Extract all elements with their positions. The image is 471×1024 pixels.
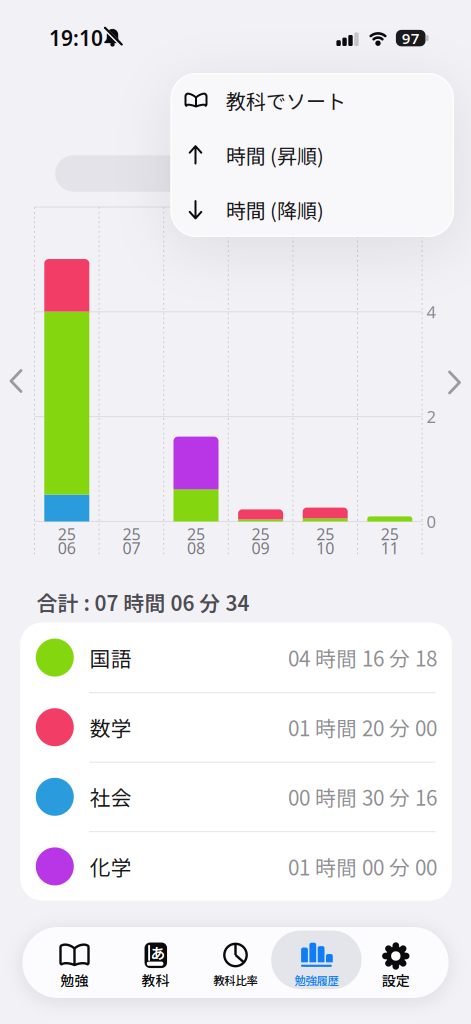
staticText: 25	[381, 523, 399, 545]
button[interactable]: 勉強履歴	[276, 928, 356, 992]
staticText: 数学	[90, 712, 132, 742]
button[interactable]: 設定	[356, 928, 436, 992]
button[interactable]: 教科比率	[195, 928, 275, 992]
staticText: 10	[316, 537, 334, 559]
staticText: 25	[122, 523, 140, 545]
staticText: 25	[252, 523, 270, 545]
staticText: 教科比率	[213, 972, 257, 988]
button[interactable]: 国語	[20, 623, 452, 692]
button[interactable]: 教科でソート	[170, 73, 454, 128]
staticText: 01 時間 20 分 00	[288, 712, 437, 742]
staticText: 設定	[382, 970, 410, 990]
staticText: 09	[252, 537, 270, 559]
button[interactable]: あ	[115, 928, 195, 992]
staticText: 教科でソート	[226, 86, 346, 115]
staticText: 25	[316, 523, 334, 545]
staticText: 19:10	[49, 23, 103, 52]
staticText: 0	[426, 510, 436, 533]
button[interactable]: 化学	[20, 832, 452, 901]
button[interactable]: 勉強	[34, 928, 114, 992]
staticText: 時間 (降順)	[226, 195, 324, 224]
button[interactable]	[442, 368, 466, 398]
staticText: 時間 (昇順)	[226, 140, 324, 169]
staticText: 07	[122, 537, 140, 559]
button[interactable]: 時間 (降順)	[170, 182, 454, 237]
staticText: 25	[187, 523, 205, 545]
button[interactable]: 数学	[20, 692, 452, 762]
staticText: 08	[187, 537, 205, 559]
staticText: 国語	[90, 643, 132, 672]
staticText: 01 時間 00 分 00	[288, 851, 437, 881]
staticText: 11	[381, 537, 399, 559]
button[interactable]: 社会	[20, 762, 452, 832]
staticText: 97	[402, 28, 420, 48]
staticText: 2	[426, 405, 436, 428]
staticText: 04 時間 16 分 18	[288, 643, 437, 672]
button[interactable]	[4, 366, 28, 396]
staticText: 勉強	[60, 970, 88, 990]
staticText: 教科	[141, 970, 169, 990]
staticText: 06	[58, 537, 76, 559]
staticText: 00 時間 30 分 16	[288, 782, 437, 812]
button[interactable]: 時間 (昇順)	[170, 128, 454, 182]
staticText: 勉強履歴	[294, 972, 338, 988]
button[interactable]	[55, 155, 235, 192]
staticText: 4	[426, 300, 436, 323]
staticText: 25	[58, 523, 76, 545]
staticText: あ	[151, 942, 166, 963]
staticText: 化学	[90, 851, 132, 881]
staticText: 合計 : 07 時間 06 分 34	[36, 587, 249, 617]
staticText: 社会	[90, 782, 132, 812]
